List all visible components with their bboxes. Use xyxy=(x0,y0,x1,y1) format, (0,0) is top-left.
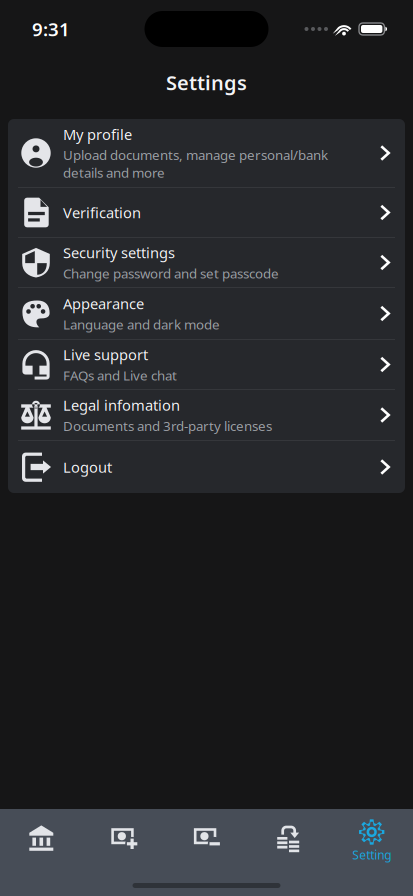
staticText: Upload documents, manage personal/bank d… xyxy=(63,146,328,181)
staticText: Appearance xyxy=(63,294,144,313)
button[interactable]: Security settings xyxy=(8,238,405,287)
button[interactable]: Setting xyxy=(330,813,413,863)
staticText: 9:31 xyxy=(32,17,70,41)
button[interactable]: Appearance xyxy=(8,288,405,339)
staticText: Settings xyxy=(166,69,247,96)
staticText: Change password and set passcode xyxy=(63,264,279,282)
button[interactable]: Deposit xyxy=(83,813,165,863)
button[interactable]: Live support xyxy=(8,340,405,389)
button[interactable]: Verification xyxy=(8,188,405,237)
staticText: FAQs and Live chat xyxy=(63,366,177,384)
staticText: My profile xyxy=(63,125,132,144)
staticText: Verification xyxy=(63,203,141,222)
staticText: Live support xyxy=(63,345,148,364)
staticText: Language and dark mode xyxy=(63,315,220,333)
staticText: Legal infomation xyxy=(63,395,180,415)
staticText: Logout xyxy=(63,457,112,477)
button[interactable]: Accounts xyxy=(0,813,83,863)
button[interactable]: My profile xyxy=(8,119,405,187)
staticText: Setting xyxy=(352,847,391,863)
staticText: Documents and 3rd-party licenses xyxy=(63,417,272,435)
button[interactable]: Legal infomation xyxy=(8,390,405,440)
button[interactable]: Withdraw xyxy=(165,813,248,863)
button[interactable]: Logout xyxy=(8,441,405,493)
staticText: Security settings xyxy=(63,243,175,262)
button[interactable]: Transfers xyxy=(248,813,330,863)
